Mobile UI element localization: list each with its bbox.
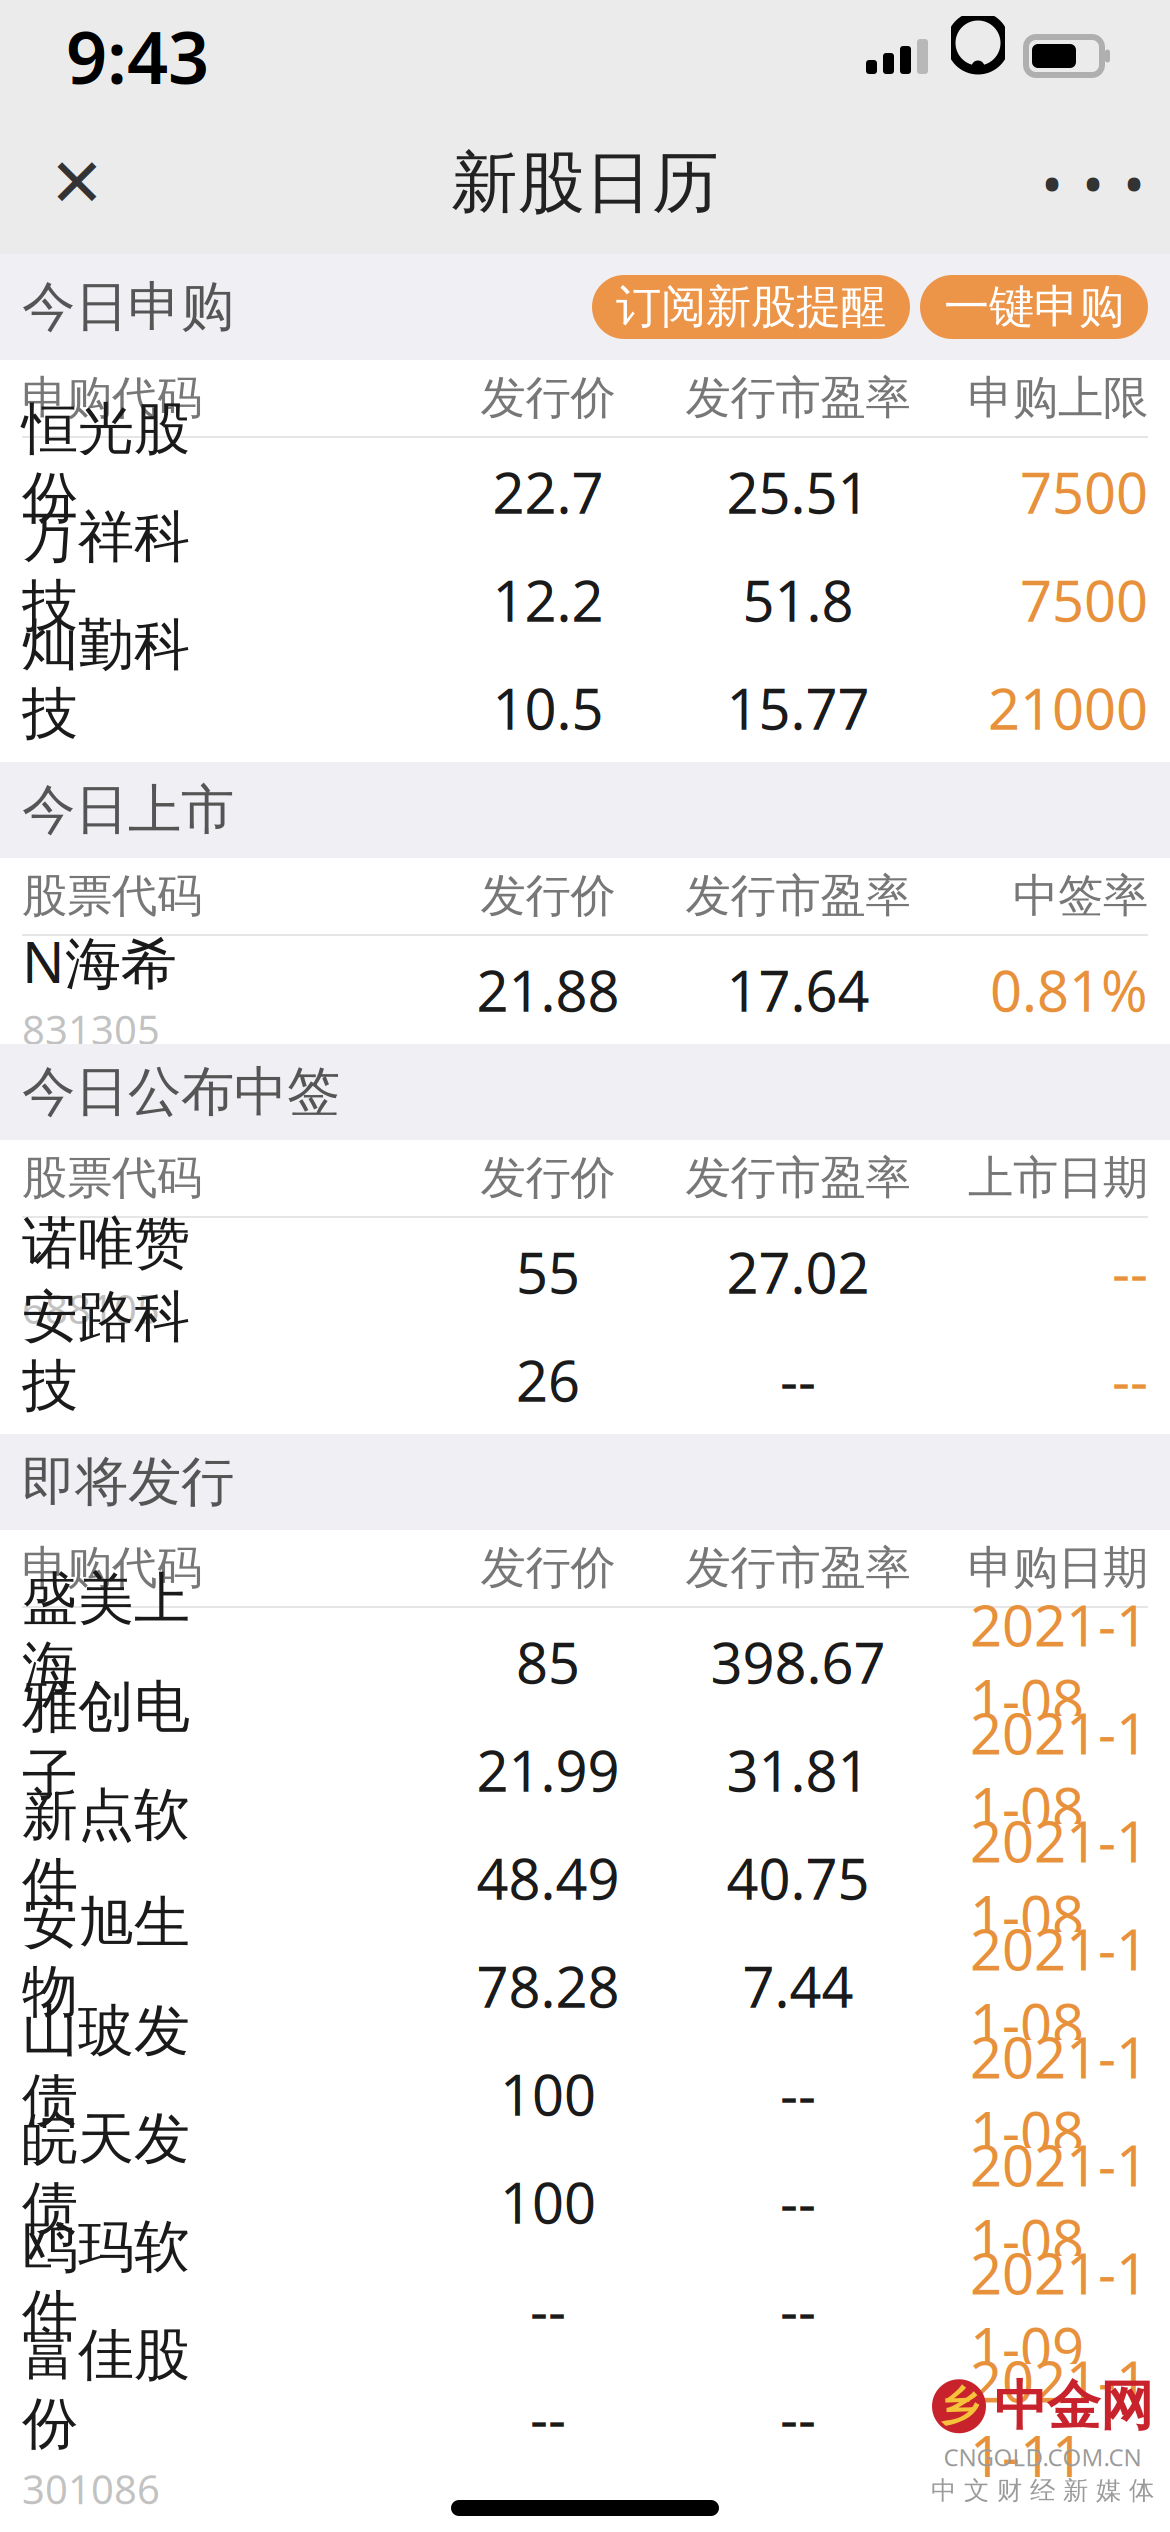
staticText: 灿勤科技 — [22, 611, 190, 748]
staticText: 上市日期 — [968, 1150, 1148, 1206]
staticText: 301086 — [22, 2462, 160, 2515]
staticText: 订阅新股提醒 — [616, 279, 886, 335]
button[interactable]: 富佳股份 — [0, 2364, 1170, 2472]
staticText: 2021-11-11 — [970, 2344, 1148, 2492]
staticText: 2021-11-08 — [970, 1804, 1148, 1952]
staticText: 21000 — [988, 671, 1148, 745]
staticText: 申购代码 — [22, 1540, 202, 1596]
staticText: 2021-11-08 — [970, 1912, 1148, 2060]
button[interactable]: 一键申购 — [920, 275, 1148, 339]
button[interactable]: 安路科技 — [0, 1326, 1170, 1434]
staticText: -- — [780, 2273, 816, 2347]
staticText: 100 — [500, 2165, 596, 2239]
button[interactable]: 皖天发债 — [0, 2148, 1170, 2256]
button[interactable]: 盛美上海 — [0, 1608, 1170, 1716]
staticText: 股票代码 — [22, 1150, 202, 1206]
staticText: 688105 — [22, 1282, 160, 1335]
staticText: 发行市盈率 — [685, 370, 910, 426]
staticText: 今日公布中签 — [22, 1059, 340, 1125]
button[interactable]: 订阅新股提醒 — [592, 275, 910, 339]
staticText: 富佳股份 — [22, 2321, 190, 2458]
staticText: 301185 — [22, 2354, 160, 2407]
staticText: N海希 — [22, 924, 177, 999]
staticText: 恒光股份 — [22, 395, 190, 532]
staticText: 发行市盈率 — [685, 1150, 910, 1206]
staticText: 787075 — [22, 2030, 160, 2083]
staticText: 申购代码 — [22, 370, 202, 426]
staticText: 今日申购 — [22, 274, 234, 340]
staticText: ✕ — [49, 145, 105, 221]
staticText: 鸥玛软件 — [22, 2213, 190, 2350]
staticText: 山玻发债 — [22, 1997, 190, 2134]
button[interactable]: 鸥玛软件 — [0, 2256, 1170, 2364]
staticText: 301118 — [22, 536, 160, 589]
staticText: 26 — [516, 1343, 580, 1417]
staticText: 2021-11-08 — [970, 1588, 1148, 1736]
staticText: 一键申购 — [944, 279, 1124, 335]
staticText: 787082 — [22, 1706, 160, 1759]
staticText: 7500 — [1020, 563, 1148, 637]
staticText: 15.77 — [726, 671, 869, 745]
staticText: 申购上限 — [968, 370, 1148, 426]
staticText: 48.49 — [476, 1841, 619, 1915]
staticText: 787232 — [22, 1922, 160, 1975]
staticText: 中 文 财 经 新 媒 体 — [931, 2475, 1154, 2506]
staticText: 安旭生物 — [22, 1889, 190, 2026]
staticText: 乡 — [939, 2382, 979, 2431]
staticText: -- — [1112, 1235, 1148, 1309]
staticText: 皖天发债 — [22, 2105, 190, 2242]
staticText: -- — [780, 2381, 816, 2455]
staticText: 55 — [516, 1235, 580, 1309]
staticText: 12.2 — [492, 563, 603, 637]
staticText: 31.81 — [726, 1733, 869, 1807]
staticText: 股票代码 — [22, 868, 202, 924]
staticText: 发行价 — [480, 868, 615, 924]
staticText: -- — [780, 2057, 816, 2131]
staticText: 即将发行 — [22, 1449, 234, 1515]
staticText: 新股日历 — [451, 142, 719, 224]
button[interactable]: 安旭生物 — [0, 1932, 1170, 2040]
button[interactable]: More options — [1038, 128, 1148, 238]
staticText: 100 — [500, 2057, 596, 2131]
staticText: 发行市盈率 — [685, 868, 910, 924]
button[interactable]: N海希 — [0, 936, 1170, 1044]
button[interactable]: Close — [22, 128, 132, 238]
staticText: 7500 — [1020, 455, 1148, 529]
staticText: 雅创电子 — [22, 1673, 190, 1810]
button[interactable]: 恒光股份 — [0, 438, 1170, 546]
staticText: • • • — [1043, 153, 1142, 213]
staticText: 754689 — [22, 2246, 160, 2299]
staticText: 发行价 — [480, 370, 615, 426]
staticText: 22.7 — [492, 455, 603, 529]
staticText: 发行价 — [480, 1540, 615, 1596]
staticText: 今日上市 — [22, 777, 234, 843]
staticText: 发行市盈率 — [685, 1540, 910, 1596]
staticText: -- — [780, 2165, 816, 2239]
staticText: 2021-11-09 — [970, 2236, 1148, 2384]
button[interactable]: 万祥科技 — [0, 546, 1170, 654]
staticText: 中签率 — [1013, 868, 1148, 924]
staticText: 51.8 — [742, 563, 853, 637]
staticText: 盛美上海 — [22, 1565, 190, 1702]
staticText: 21.99 — [476, 1733, 619, 1807]
staticText: 27.02 — [726, 1235, 869, 1309]
staticText: 713006 — [22, 2138, 160, 2191]
staticText: 40.75 — [726, 1841, 869, 1915]
staticText: 万祥科技 — [22, 503, 190, 640]
staticText: 688107 — [22, 1424, 160, 1477]
staticText: 85 — [516, 1625, 580, 1699]
staticText: 831305 — [22, 1003, 160, 1056]
staticText: 中金网 — [994, 2373, 1153, 2439]
button[interactable]: 诺唯赞 — [0, 1218, 1170, 1326]
staticText: 398.67 — [710, 1625, 885, 1699]
staticText: 安路科技 — [22, 1283, 190, 1420]
staticText: 2021-11-08 — [970, 1696, 1148, 1844]
staticText: 21.88 — [476, 953, 619, 1027]
button[interactable]: 山玻发债 — [0, 2040, 1170, 2148]
staticText: -- — [530, 2381, 566, 2455]
button[interactable]: 雅创电子 — [0, 1716, 1170, 1824]
staticText: 发行价 — [480, 1150, 615, 1206]
button[interactable]: 新点软件 — [0, 1824, 1170, 1932]
button[interactable]: 灿勤科技 — [0, 654, 1170, 762]
staticText: 2021-11-08 — [970, 2020, 1148, 2168]
